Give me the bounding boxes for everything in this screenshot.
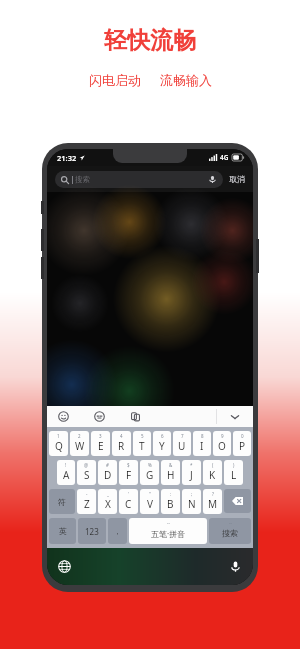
staticText: @ <box>84 462 89 468</box>
staticText: X <box>105 497 111 511</box>
button[interactable]: 5 <box>133 431 151 456</box>
button[interactable]: ? <box>203 489 222 514</box>
staticText: 搜索 <box>75 175 90 184</box>
staticText: V <box>147 497 153 511</box>
staticText: 6 <box>161 433 164 439</box>
staticText: I <box>200 439 204 453</box>
staticText: ! <box>65 462 67 468</box>
button[interactable]: # <box>98 460 117 485</box>
staticText: P <box>239 439 246 453</box>
button[interactable]: $ <box>119 460 138 485</box>
staticText: Q <box>55 439 63 453</box>
staticText: B <box>167 497 174 511</box>
staticText: 7 <box>181 433 184 439</box>
button[interactable]: ， <box>108 518 127 544</box>
button[interactable]: 0 <box>233 431 251 456</box>
button[interactable]: - <box>77 489 96 514</box>
staticText: 0 <box>241 433 244 439</box>
staticText: - <box>86 491 88 497</box>
staticText: : <box>170 491 172 497</box>
staticText: L <box>231 468 237 482</box>
staticText: 英 <box>59 526 67 536</box>
staticText: 符 <box>58 497 66 507</box>
staticText: N <box>188 497 196 511</box>
button[interactable]: 1 <box>49 431 68 456</box>
staticText: # <box>106 462 109 468</box>
button[interactable]: -- <box>209 518 251 544</box>
staticText: A <box>63 468 70 482</box>
staticText: E <box>98 439 104 453</box>
staticText: 2 <box>78 433 81 439</box>
staticText: ? <box>212 491 214 497</box>
button[interactable]: 123 <box>78 518 106 544</box>
button[interactable]: 4 <box>112 431 131 456</box>
staticText: Z <box>84 497 90 511</box>
staticText: 123 <box>85 526 99 537</box>
button[interactable]: ' <box>119 489 138 514</box>
staticText: S <box>84 468 90 482</box>
button[interactable]: _ <box>98 489 117 514</box>
button[interactable]: @ <box>77 460 96 485</box>
staticText: $ <box>127 462 130 468</box>
staticText: O <box>218 439 226 453</box>
staticText: & <box>169 462 173 468</box>
button[interactable]: " <box>140 489 159 514</box>
button[interactable]: 取消 <box>229 174 245 184</box>
button[interactable]: 英 <box>49 518 76 544</box>
button[interactable]: Voice search <box>208 175 217 184</box>
button[interactable]: Change language <box>58 560 71 573</box>
staticText: ; <box>191 491 193 497</box>
staticText: 五笔·拼音 <box>151 528 186 539</box>
button[interactable]: Voice input <box>229 560 242 573</box>
staticText: 流畅输入 <box>160 72 212 88</box>
button[interactable]: -- <box>129 518 207 544</box>
button[interactable]: ) <box>224 460 243 485</box>
staticText: ( <box>212 462 214 468</box>
staticText: % <box>148 462 152 468</box>
staticText: ) <box>233 462 235 468</box>
button[interactable]: * <box>182 460 201 485</box>
staticText: D <box>104 468 112 482</box>
staticText: 1 <box>57 433 60 439</box>
button[interactable]: Emoji <box>58 411 69 422</box>
button[interactable]: 6 <box>153 431 171 456</box>
button[interactable]: : <box>161 489 180 514</box>
staticText: C <box>125 497 132 511</box>
staticText: ' <box>128 491 130 497</box>
button[interactable]: ( <box>203 460 222 485</box>
button[interactable]: ! <box>57 460 75 485</box>
button[interactable]: 9 <box>213 431 231 456</box>
button[interactable]: Hide keyboard <box>217 406 253 427</box>
staticText: -- <box>167 520 170 526</box>
staticText: 3 <box>99 433 102 439</box>
staticText: T <box>139 439 145 453</box>
button[interactable]: 3 <box>91 431 110 456</box>
staticText: _ <box>107 491 109 497</box>
staticText: 4 <box>120 433 123 439</box>
button[interactable]: 符 <box>49 489 75 514</box>
button[interactable]: Keyboard layout <box>94 411 105 422</box>
button[interactable]: % <box>140 460 159 485</box>
staticText: 闪电启动 <box>89 72 141 88</box>
staticText: H <box>167 468 175 482</box>
staticText: U <box>178 439 186 453</box>
button[interactable]: Clipboard <box>130 411 141 422</box>
button[interactable]: Backspace <box>224 489 251 513</box>
staticText: R <box>118 439 125 453</box>
staticText: K <box>209 468 216 482</box>
staticText: J <box>190 468 193 482</box>
button[interactable]: 8 <box>193 431 211 456</box>
staticText: G <box>146 468 154 482</box>
button[interactable]: 7 <box>173 431 191 456</box>
button[interactable]: & <box>161 460 180 485</box>
staticText: 取消 <box>229 174 245 184</box>
staticText: M <box>208 497 218 511</box>
staticText: 5 <box>141 433 144 439</box>
staticText: ， <box>114 527 121 536</box>
staticText: W <box>75 439 85 453</box>
button[interactable]: 搜索 <box>55 171 223 188</box>
button[interactable]: 2 <box>70 431 89 456</box>
staticText: * <box>190 462 193 468</box>
button[interactable]: ; <box>182 489 201 514</box>
